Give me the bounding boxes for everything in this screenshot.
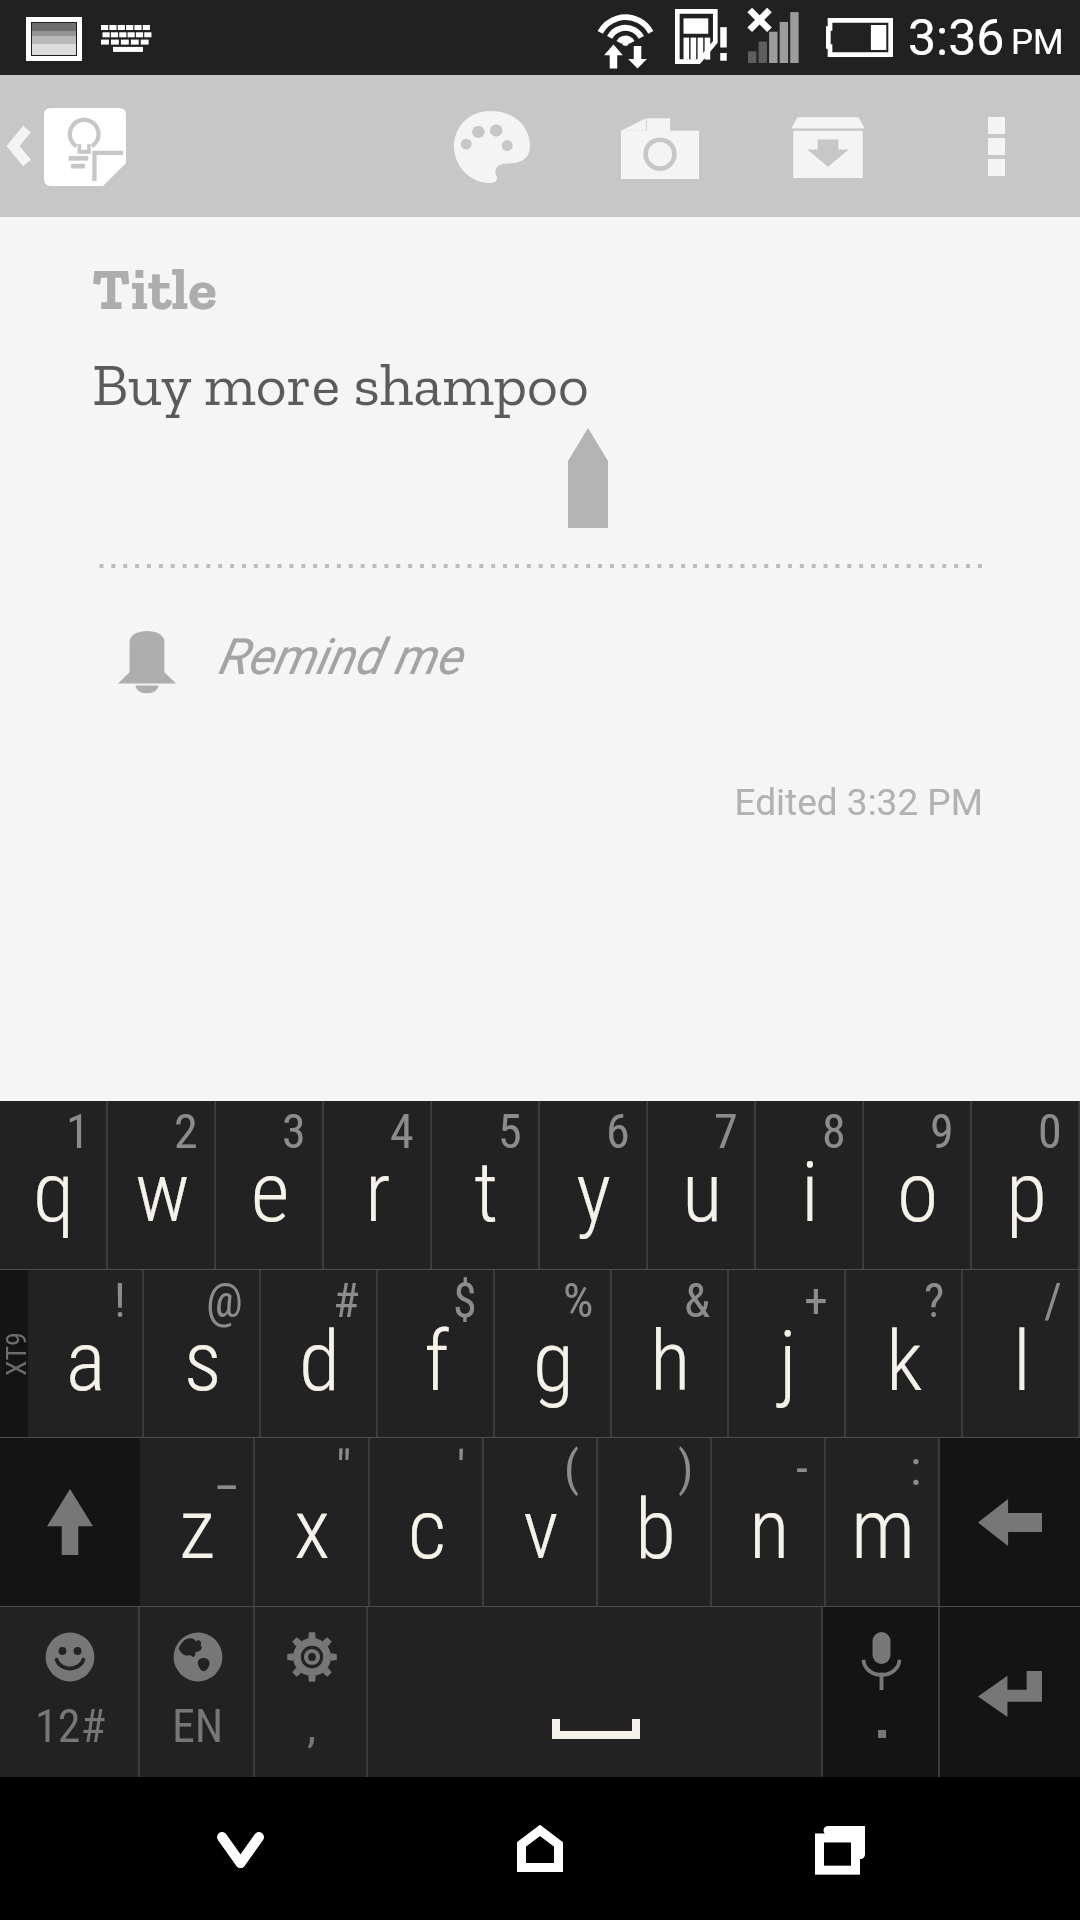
button[interactable]: Enter xyxy=(940,1607,1080,1777)
staticText: r xyxy=(365,1143,391,1241)
staticText: j xyxy=(779,1312,797,1410)
staticText: XT9 xyxy=(0,1332,28,1376)
staticText: 7 xyxy=(714,1103,738,1159)
button[interactable]: _ xyxy=(140,1438,255,1606)
button[interactable]: ) xyxy=(598,1438,712,1606)
staticText: Remind me xyxy=(217,628,462,687)
button[interactable]: ( xyxy=(484,1438,598,1606)
staticText: x xyxy=(294,1480,331,1578)
button[interactable]: & xyxy=(612,1270,729,1437)
button[interactable]: 6 xyxy=(540,1101,648,1269)
staticText: u xyxy=(682,1143,723,1241)
button[interactable]: 0 xyxy=(972,1101,1080,1269)
button[interactable]: Remind me xyxy=(0,599,1080,719)
button[interactable]: Navigate up xyxy=(0,75,140,217)
staticText: g xyxy=(533,1312,574,1410)
staticText: w xyxy=(135,1143,190,1241)
staticText: m xyxy=(851,1480,916,1578)
staticText: 1 xyxy=(66,1103,90,1159)
staticText: 3 xyxy=(282,1103,306,1159)
button[interactable]: " xyxy=(255,1438,370,1606)
button[interactable]: Home xyxy=(450,1777,630,1920)
button[interactable]: : xyxy=(826,1438,940,1606)
staticText: c xyxy=(408,1480,447,1578)
button[interactable]: ? xyxy=(846,1270,963,1437)
staticText: 0 xyxy=(1038,1103,1062,1159)
staticText: Title xyxy=(92,253,217,324)
staticText: l xyxy=(1013,1312,1031,1410)
staticText: & xyxy=(684,1272,711,1328)
button[interactable]: 8 xyxy=(756,1101,864,1269)
staticText: o xyxy=(897,1143,939,1241)
staticText: s xyxy=(184,1312,222,1410)
staticText: d xyxy=(299,1312,340,1410)
button[interactable]: Change colour xyxy=(412,75,572,217)
staticText: % xyxy=(563,1272,594,1328)
staticText: - xyxy=(796,1440,808,1496)
staticText: z xyxy=(179,1480,216,1578)
staticText: 8 xyxy=(822,1103,846,1159)
staticText: a xyxy=(66,1312,106,1410)
staticText: i xyxy=(801,1143,819,1241)
staticText: n xyxy=(749,1480,790,1578)
staticText: ? xyxy=(924,1272,945,1328)
staticText: PM xyxy=(1011,22,1064,63)
staticText: _ xyxy=(217,1440,237,1496)
staticText: q xyxy=(33,1143,75,1241)
button[interactable]: More options xyxy=(930,75,1080,217)
button[interactable]: Hide keyboard xyxy=(150,1777,330,1920)
staticText: , xyxy=(307,1699,317,1753)
button[interactable]: Backspace xyxy=(940,1438,1080,1606)
button[interactable]: $ xyxy=(378,1270,495,1437)
button[interactable]: 2 xyxy=(108,1101,216,1269)
staticText: @ xyxy=(206,1272,243,1328)
staticText: ) xyxy=(678,1440,694,1496)
button[interactable]: Archive xyxy=(750,75,910,217)
staticText: t xyxy=(474,1143,499,1241)
button[interactable]: ' xyxy=(370,1438,484,1606)
button[interactable]: 9 xyxy=(864,1101,972,1269)
button[interactable]: / xyxy=(963,1270,1080,1437)
button[interactable]: + xyxy=(729,1270,846,1437)
button[interactable]: @ xyxy=(144,1270,261,1437)
staticText: 12# xyxy=(35,1699,106,1753)
button[interactable]: % xyxy=(495,1270,612,1437)
button[interactable]: Recent apps xyxy=(750,1777,930,1920)
staticText: v xyxy=(523,1480,559,1578)
staticText: ( xyxy=(564,1440,580,1496)
staticText: / xyxy=(1044,1272,1062,1328)
staticText: Edited 3:32 PM xyxy=(0,781,983,824)
button[interactable]: , xyxy=(255,1607,368,1777)
staticText: y xyxy=(576,1143,612,1241)
staticText: ! xyxy=(114,1272,126,1328)
button[interactable]: EN xyxy=(140,1607,255,1777)
button[interactable]: 4 xyxy=(324,1101,432,1269)
button[interactable]: - xyxy=(712,1438,826,1606)
staticText: $ xyxy=(453,1272,477,1328)
button[interactable]: 1 xyxy=(0,1101,108,1269)
staticText: 4 xyxy=(390,1103,414,1159)
staticText: h xyxy=(650,1312,691,1410)
staticText: k xyxy=(886,1312,923,1410)
button[interactable]: Space xyxy=(368,1607,823,1777)
staticText: ' xyxy=(457,1440,466,1496)
staticText: EN xyxy=(172,1699,224,1753)
button[interactable]: # xyxy=(261,1270,378,1437)
button[interactable]: Voice input xyxy=(823,1607,940,1777)
staticText: 5 xyxy=(498,1103,522,1159)
staticText: 2 xyxy=(174,1103,198,1159)
button[interactable]: Add image xyxy=(580,75,740,217)
button[interactable]: 3 xyxy=(216,1101,324,1269)
button[interactable]: 7 xyxy=(648,1101,756,1269)
button[interactable]: 5 xyxy=(432,1101,540,1269)
button[interactable]: 12# xyxy=(0,1607,140,1777)
button[interactable]: ! xyxy=(28,1270,144,1437)
staticText: 6 xyxy=(606,1103,630,1159)
staticText: + xyxy=(804,1272,828,1328)
staticText: : xyxy=(910,1440,922,1496)
staticText: e xyxy=(251,1143,290,1241)
button[interactable]: XT9 xyxy=(0,1270,28,1437)
staticText: 3:36 xyxy=(908,9,1005,68)
staticText: # xyxy=(333,1272,360,1328)
button[interactable]: Shift xyxy=(0,1438,140,1606)
